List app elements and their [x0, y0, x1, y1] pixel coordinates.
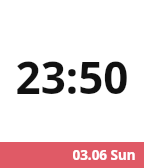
button[interactable]: Date 03.06 Sunday	[0, 142, 144, 168]
button[interactable]: Current time 23:50	[0, 0, 144, 142]
staticText: 03.06 Sun	[72, 146, 136, 164]
staticText: 23:50	[15, 47, 129, 107]
